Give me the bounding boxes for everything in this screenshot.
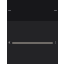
button[interactable]: Back — [8, 41, 11, 44]
button[interactable]: More options — [54, 41, 57, 44]
